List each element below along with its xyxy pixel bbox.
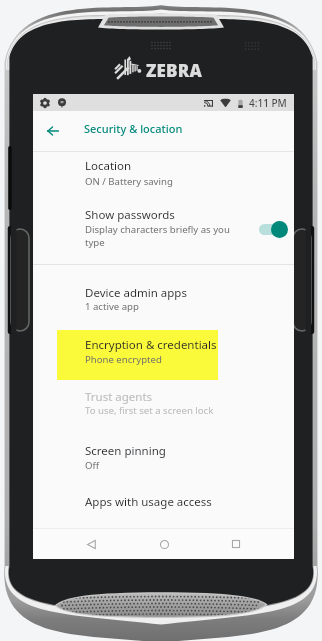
button[interactable]: Home xyxy=(150,530,178,558)
staticText: Apps with usage access xyxy=(85,494,212,510)
button[interactable] xyxy=(33,486,294,516)
button[interactable]: Back xyxy=(77,530,105,558)
button[interactable] xyxy=(33,199,294,251)
button[interactable] xyxy=(33,277,294,317)
staticText: Display characters briefly as you type xyxy=(85,223,251,249)
staticText: ON / Battery saving xyxy=(85,175,173,188)
button[interactable] xyxy=(33,435,294,475)
staticText: Security & location xyxy=(84,121,183,136)
staticText: Location xyxy=(85,158,132,174)
staticText: To use, first set a screen lock xyxy=(85,404,214,417)
staticText: ZEBRA xyxy=(146,59,203,82)
button[interactable] xyxy=(33,381,294,420)
staticText: Trust agents xyxy=(85,389,153,405)
staticText: Screen pinning xyxy=(85,443,166,459)
button[interactable]: Navigate up xyxy=(41,119,65,143)
staticText: 1 active app xyxy=(85,300,139,313)
staticText: Phone encrypted xyxy=(85,353,162,366)
staticText: Encryption & credentials xyxy=(85,337,217,353)
staticText: 4:11 PM xyxy=(249,96,287,110)
button[interactable]: Recent apps xyxy=(222,530,250,558)
button[interactable] xyxy=(33,150,294,190)
staticText: Device admin apps xyxy=(85,285,187,301)
button[interactable] xyxy=(33,329,294,369)
staticText: Show passwords xyxy=(85,207,175,223)
staticText: Off xyxy=(85,459,100,472)
